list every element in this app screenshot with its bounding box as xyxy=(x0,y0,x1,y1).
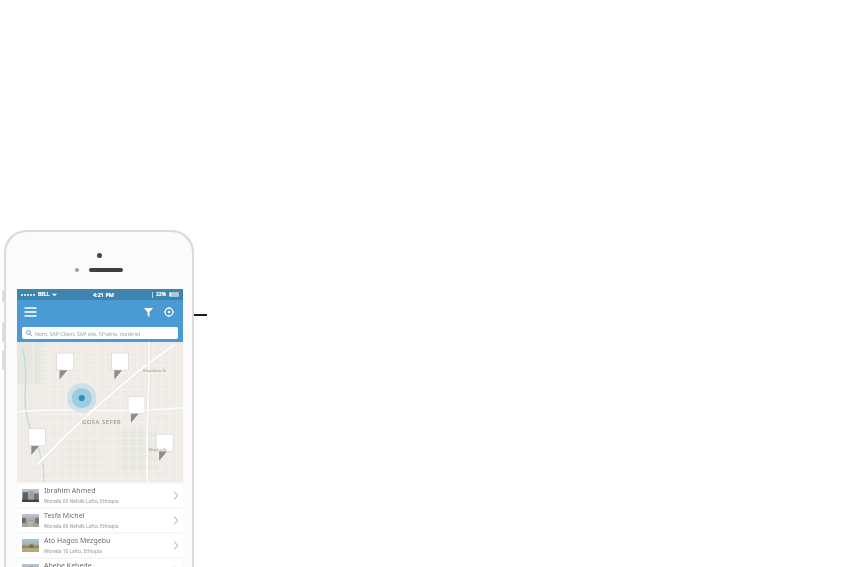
button[interactable]: Nom, SAP Client, SAP site, N°série, maté… xyxy=(26,327,174,339)
button[interactable]: Filter xyxy=(140,304,156,320)
staticText: Woreda 10 Lafto, Ethiopia xyxy=(44,548,102,555)
staticText: BELL xyxy=(38,291,50,298)
button[interactable]: My location xyxy=(161,304,177,320)
staticText: Mouditou St xyxy=(143,368,167,373)
button[interactable]: Ibrahim Ahmed xyxy=(17,484,183,507)
staticText: Nom, SAP Client, SAP site, N°série, maté… xyxy=(35,330,141,337)
button[interactable]: Menu xyxy=(22,304,38,320)
staticText: GOFA SEFER xyxy=(82,418,122,426)
staticText: Woreda 06 Nefsilk Lafto, Ethiopia xyxy=(44,523,119,530)
staticText: 22% xyxy=(156,291,167,298)
staticText: Ato Hagos Mezgebu xyxy=(44,536,111,546)
staticText: Abebe Kebede xyxy=(44,561,92,567)
staticText: 4:21 PM xyxy=(93,291,114,298)
staticText: Mucha St xyxy=(149,447,167,452)
button[interactable]: Abebe Kebede xyxy=(17,559,183,567)
staticText: Ibrahim Ahmed xyxy=(44,486,96,496)
button[interactable]: Ato Hagos Mezgebu xyxy=(17,534,183,557)
staticText: Tesfa Michel xyxy=(44,511,85,521)
staticText: Woreda 05 Nefsilk Lafto, Ethiopia xyxy=(44,498,119,505)
button[interactable]: Tesfa Michel xyxy=(17,509,183,532)
